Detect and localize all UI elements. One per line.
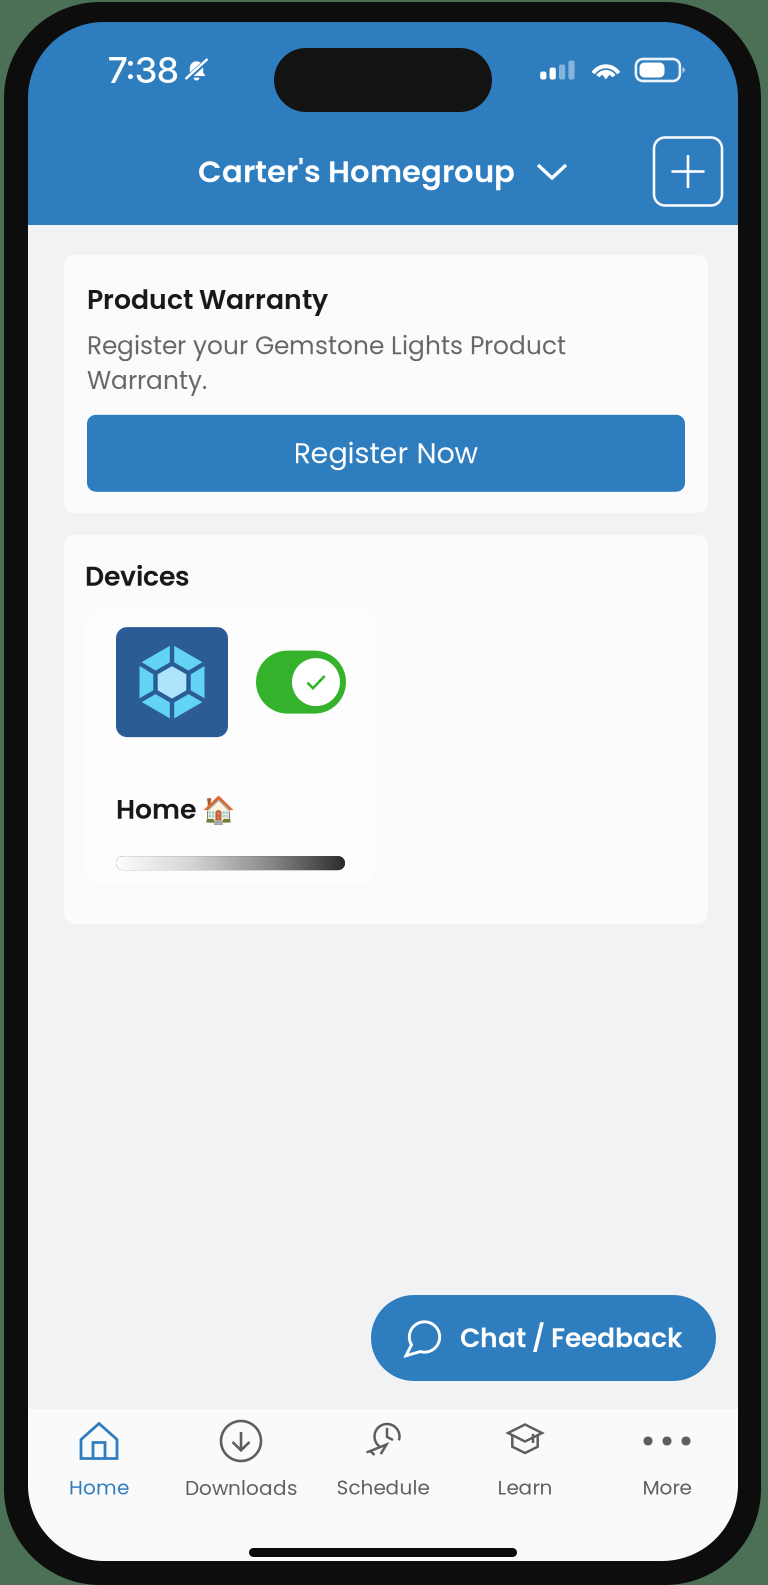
button[interactable]: Home 🏠 bbox=[85, 609, 376, 884]
staticText: Schedule bbox=[336, 1473, 429, 1501]
staticText: Register Now bbox=[293, 433, 478, 473]
button[interactable]: Chat / Feedback bbox=[371, 1295, 716, 1381]
button[interactable]: More bbox=[596, 1415, 738, 1507]
staticText: Chat / Feedback bbox=[460, 1319, 683, 1357]
button[interactable]: Home bbox=[28, 1415, 170, 1507]
button[interactable]: Toggle device bbox=[256, 651, 346, 714]
button[interactable]: Add bbox=[654, 137, 722, 205]
staticText: More bbox=[642, 1473, 691, 1501]
button[interactable]: Schedule bbox=[312, 1415, 454, 1507]
button[interactable]: Register Now bbox=[87, 415, 685, 492]
staticText: Downloads bbox=[185, 1474, 297, 1502]
button[interactable]: Carter's Homegroup bbox=[198, 150, 568, 193]
staticText: Learn bbox=[497, 1473, 552, 1501]
button[interactable]: Learn bbox=[454, 1415, 596, 1507]
staticText: Register your Gemstone Lights Product Wa… bbox=[87, 328, 566, 398]
staticText: Carter's Homegroup bbox=[198, 150, 515, 193]
staticText: Home 🏠 bbox=[116, 791, 235, 828]
staticText: Devices bbox=[85, 558, 190, 595]
staticText: Home bbox=[69, 1473, 129, 1501]
staticText: 7:38 bbox=[108, 48, 179, 92]
button[interactable]: Downloads bbox=[170, 1415, 312, 1508]
staticText: Product Warranty bbox=[87, 281, 328, 318]
